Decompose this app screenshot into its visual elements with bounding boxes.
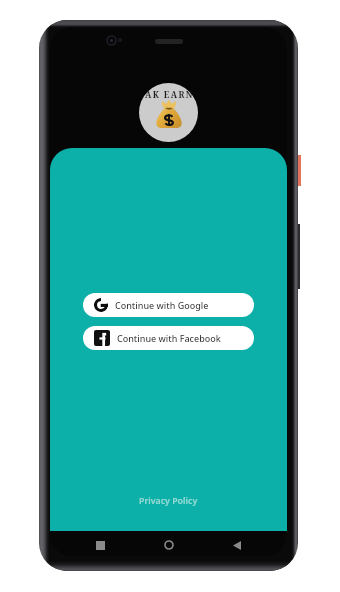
button[interactable]: Home — [159, 535, 179, 555]
button[interactable]: Back — [227, 535, 247, 555]
staticText: Continue with Facebook — [117, 332, 221, 344]
staticText: Privacy Policy — [139, 495, 198, 507]
button[interactable]: Privacy Policy — [133, 492, 204, 510]
staticText: AK EARN — [145, 89, 194, 100]
button[interactable]: Recents — [90, 535, 110, 555]
staticText: Continue with Google — [115, 299, 209, 311]
button[interactable]: Continue with Google — [83, 293, 254, 317]
button[interactable]: Continue with Facebook — [83, 326, 254, 350]
